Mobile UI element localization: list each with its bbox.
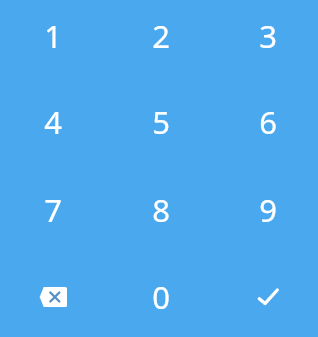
- button[interactable]: Backspace: [0, 253, 106, 337]
- button[interactable]: 7: [0, 169, 106, 253]
- staticText: 8: [152, 189, 170, 231]
- button[interactable]: 1: [0, 0, 106, 84]
- button[interactable]: 2: [106, 0, 212, 84]
- button[interactable]: 5: [106, 84, 212, 168]
- button[interactable]: Confirm: [212, 253, 318, 337]
- button[interactable]: 3: [212, 0, 318, 84]
- button[interactable]: 9: [212, 169, 318, 253]
- button[interactable]: 6: [212, 84, 318, 168]
- button[interactable]: 4: [0, 84, 106, 168]
- staticText: 1: [44, 15, 62, 57]
- staticText: 4: [44, 101, 62, 143]
- staticText: 5: [152, 101, 170, 143]
- staticText: 9: [259, 189, 277, 231]
- staticText: 7: [44, 189, 62, 231]
- button[interactable]: 0: [106, 253, 212, 337]
- staticText: 2: [152, 15, 170, 57]
- button[interactable]: 8: [106, 169, 212, 253]
- staticText: 6: [259, 101, 277, 143]
- staticText: 0: [152, 276, 170, 318]
- staticText: 3: [259, 15, 277, 57]
